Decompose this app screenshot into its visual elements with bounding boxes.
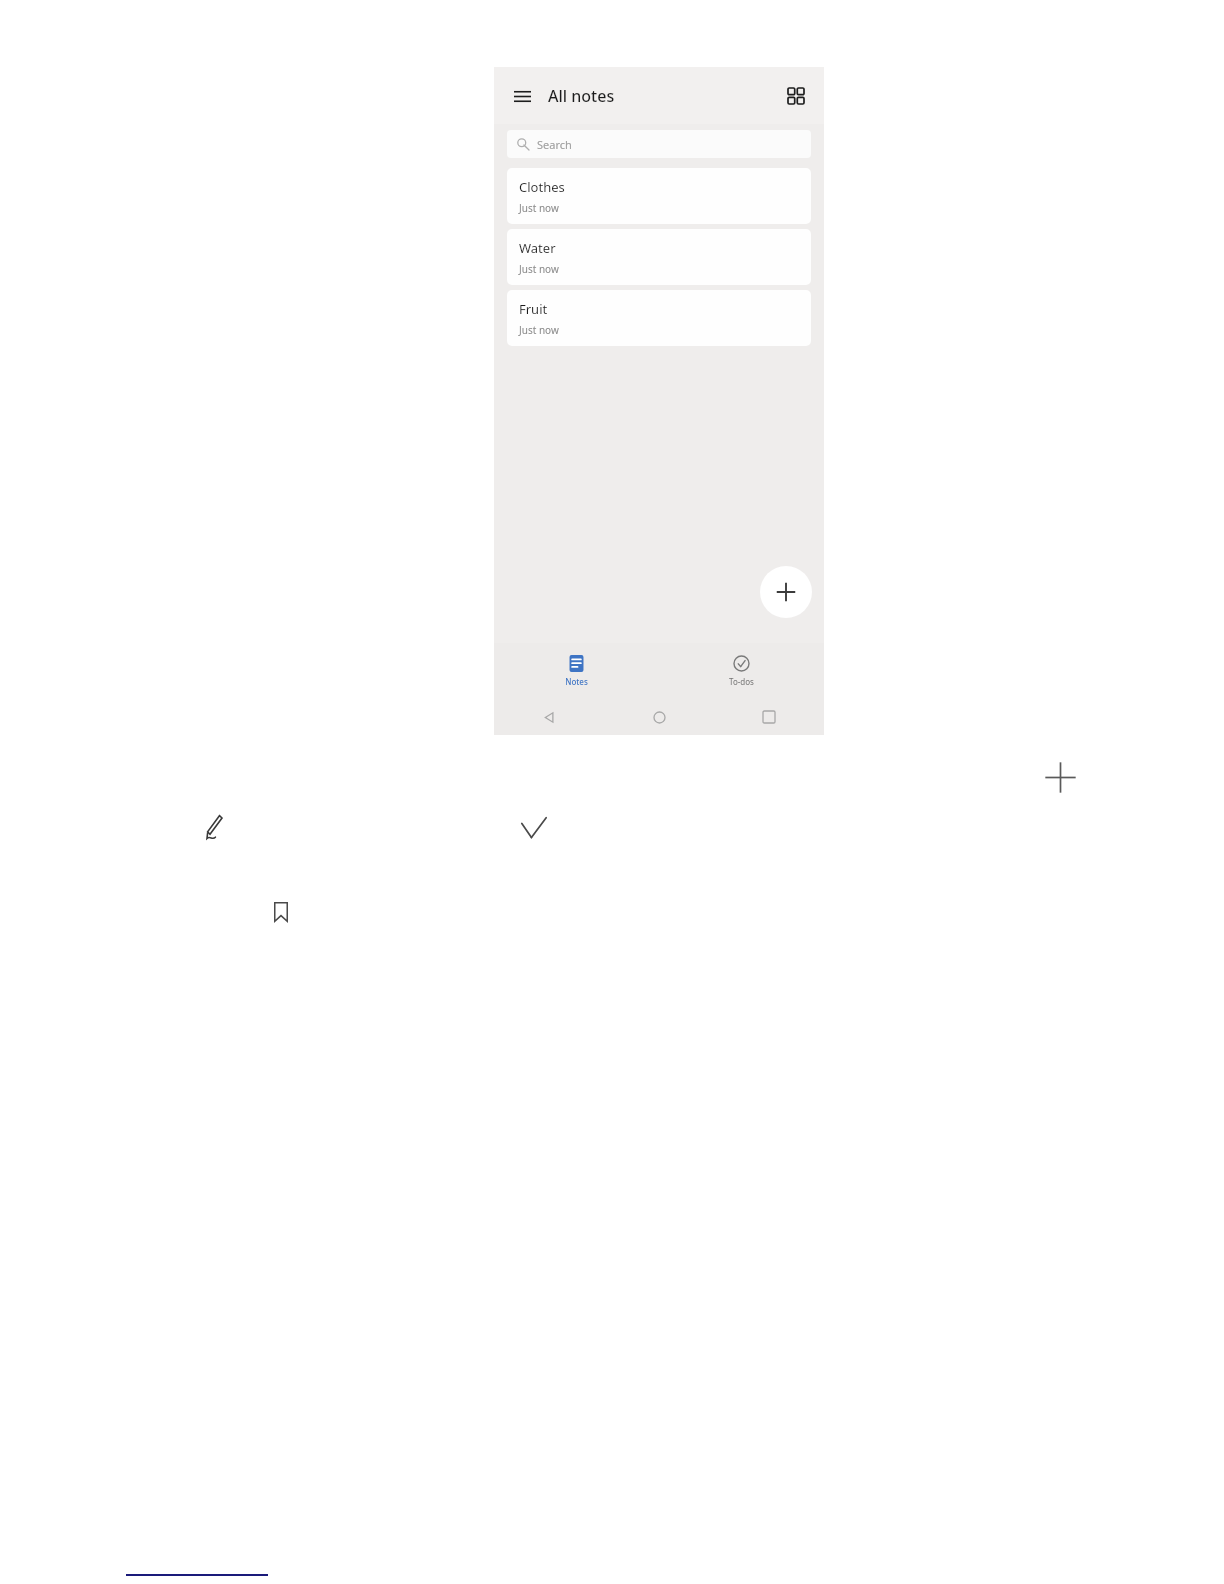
staticText: Search	[537, 137, 572, 152]
button[interactable]: Grid view	[781, 81, 811, 111]
staticText: Notes	[565, 676, 588, 687]
staticText: Just now	[519, 323, 559, 337]
staticText: All notes	[548, 85, 615, 107]
staticText: Just now	[519, 201, 559, 215]
button[interactable]: To-dos	[659, 643, 824, 699]
button[interactable]: Home	[604, 699, 714, 735]
button[interactable]: Back	[494, 699, 604, 735]
button[interactable]: Fruit	[507, 290, 811, 346]
button[interactable]: Clothes	[507, 168, 811, 224]
staticText: Just now	[519, 262, 559, 276]
button[interactable]: Menu	[507, 81, 537, 111]
staticText: Water	[519, 239, 556, 257]
button[interactable]: Water	[507, 229, 811, 285]
button[interactable]: Recents	[714, 699, 824, 735]
button[interactable]: Search	[507, 130, 811, 158]
staticText: Fruit	[519, 300, 548, 318]
staticText: Clothes	[519, 178, 565, 196]
button[interactable]: New note	[760, 566, 812, 618]
staticText: To-dos	[729, 676, 754, 687]
button[interactable]: Notes	[494, 643, 659, 699]
